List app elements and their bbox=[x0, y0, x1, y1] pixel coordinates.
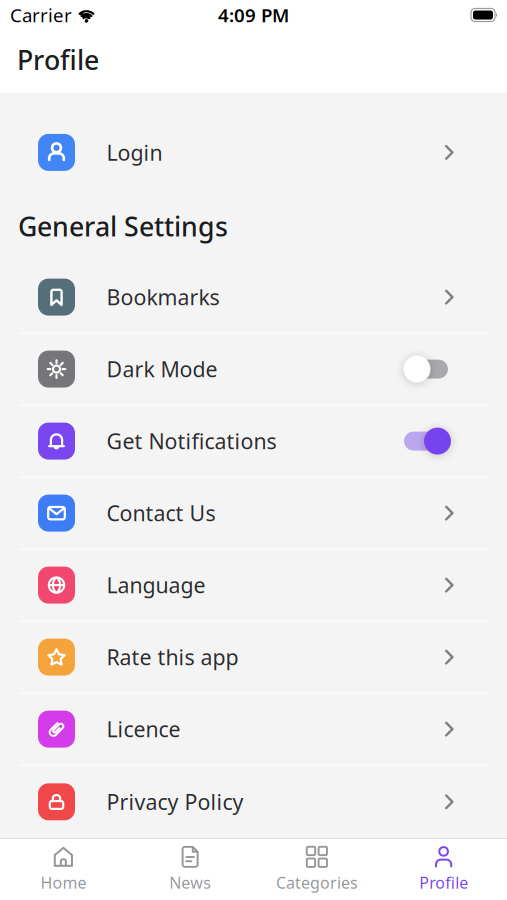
staticText: Profile bbox=[419, 872, 468, 893]
button[interactable]: Language bbox=[0, 550, 507, 620]
staticText: General Settings bbox=[18, 208, 228, 244]
staticText: Licence bbox=[106, 715, 180, 743]
staticText: Categories bbox=[276, 872, 358, 893]
staticText: Dark Mode bbox=[106, 355, 217, 383]
button[interactable]: Login bbox=[0, 116, 507, 188]
staticText: 4:09 PM bbox=[218, 3, 289, 27]
staticText: Rate this app bbox=[106, 643, 238, 671]
button[interactable]: News bbox=[127, 844, 254, 893]
staticText: News bbox=[169, 872, 211, 893]
button[interactable]: Privacy Policy bbox=[0, 766, 507, 838]
button[interactable]: Contact Us bbox=[0, 478, 507, 548]
button[interactable]: Get Notifications bbox=[404, 427, 448, 455]
button[interactable]: Profile bbox=[380, 844, 507, 893]
staticText: Login bbox=[106, 138, 162, 166]
staticText: Carrier bbox=[10, 3, 72, 27]
staticText: Get Notifications bbox=[106, 427, 276, 455]
staticText: Profile bbox=[17, 42, 99, 77]
staticText: Bookmarks bbox=[106, 283, 219, 311]
staticText: Language bbox=[106, 571, 205, 599]
staticText: Privacy Policy bbox=[106, 788, 243, 816]
button[interactable]: Rate this app bbox=[0, 622, 507, 692]
staticText: Contact Us bbox=[106, 499, 215, 527]
button[interactable]: Categories bbox=[253, 844, 380, 893]
staticText: Home bbox=[40, 872, 86, 893]
button[interactable]: Bookmarks bbox=[0, 262, 507, 332]
button[interactable]: Licence bbox=[0, 694, 507, 764]
button[interactable]: Dark Mode bbox=[404, 355, 448, 383]
button[interactable]: Home bbox=[0, 844, 127, 893]
